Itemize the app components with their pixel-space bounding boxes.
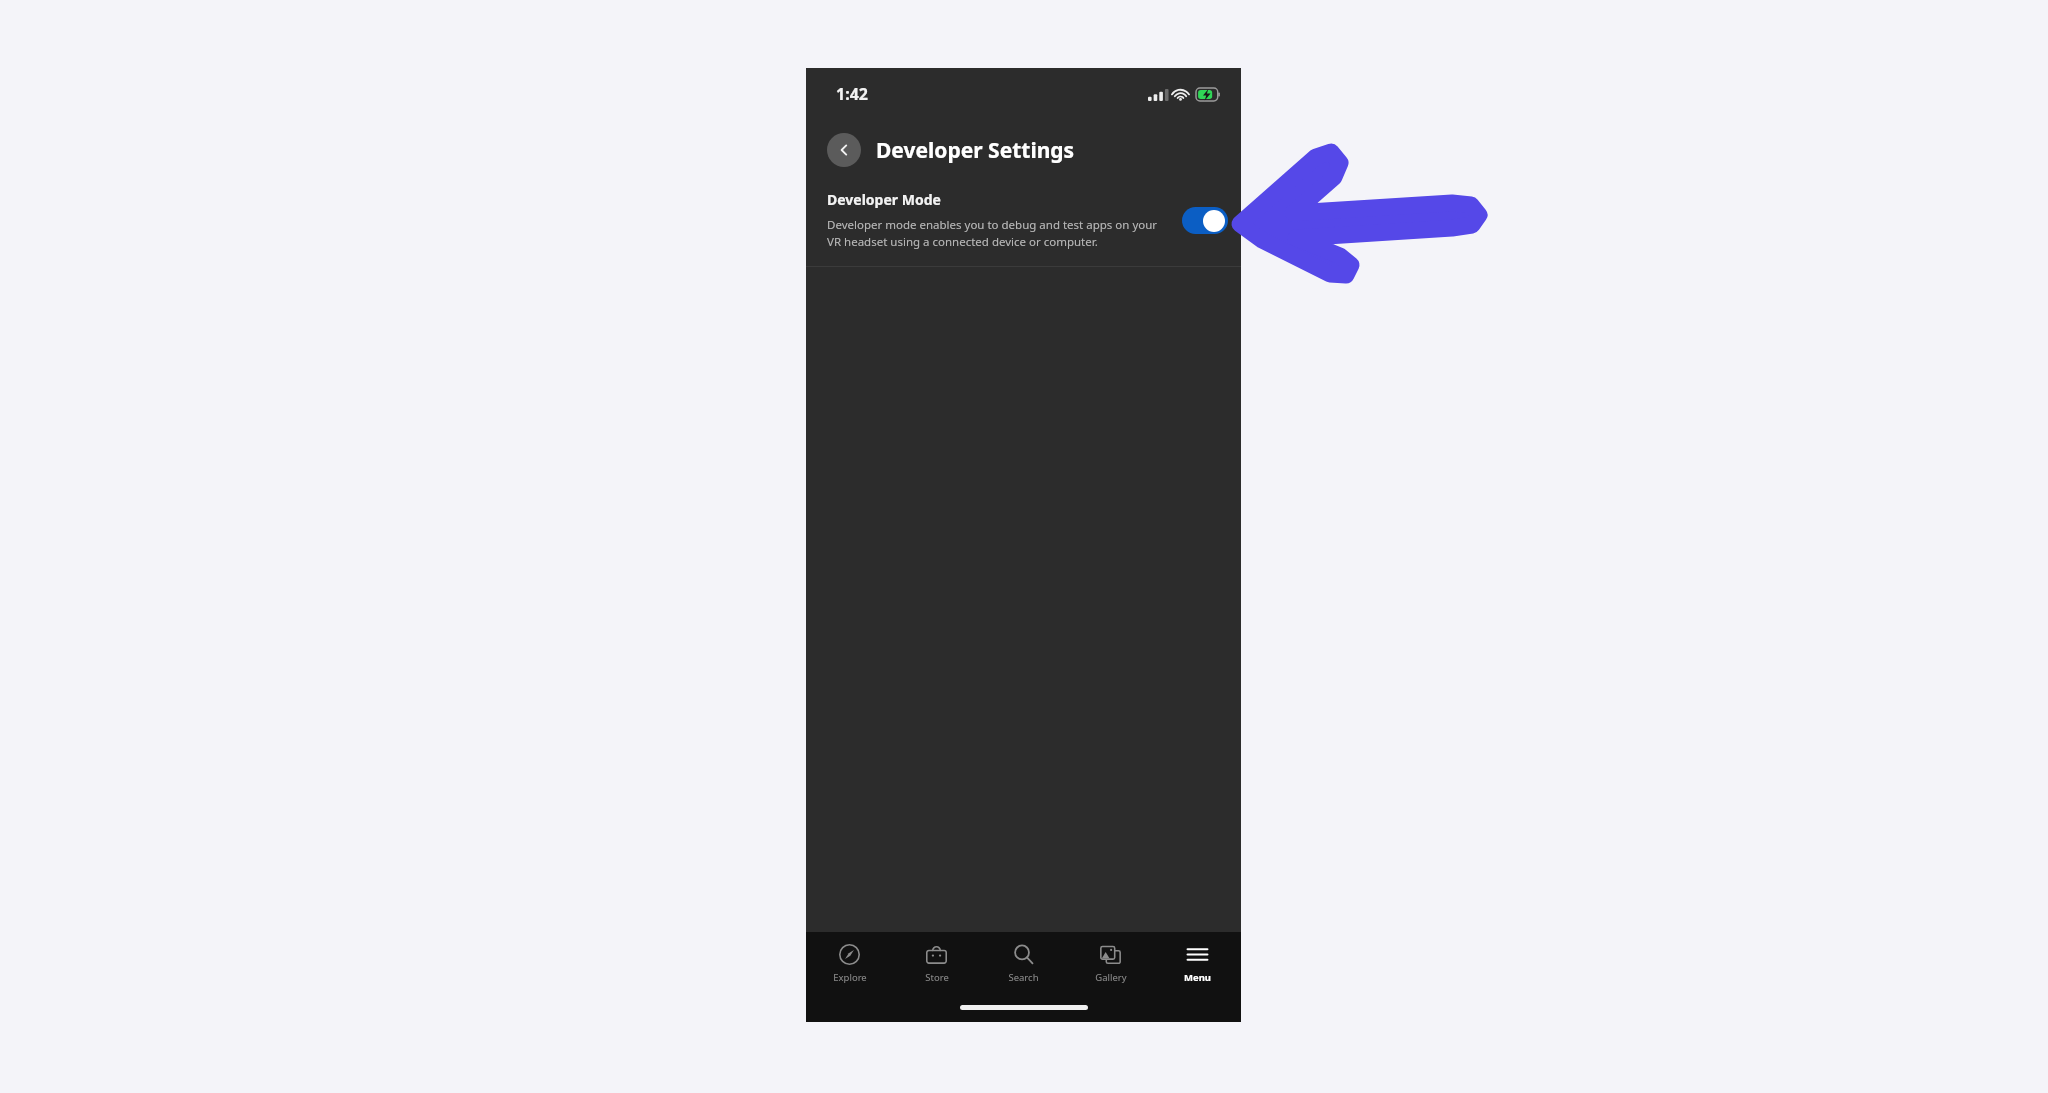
button[interactable]: Developer Mode [806,180,1241,266]
button[interactable]: Store [893,932,980,996]
button[interactable]: Developer Mode, on [1182,207,1228,234]
button[interactable]: Gallery [1067,932,1154,996]
button[interactable]: Explore [806,932,893,996]
staticText: Explore [833,971,867,984]
staticText: Developer Mode [827,190,941,209]
staticText: Developer mode enables you to debug and … [827,217,1160,250]
staticText: 1:42 [836,83,868,105]
button[interactable]: Search [980,932,1067,996]
staticText: Menu [1184,971,1211,984]
staticText: Developer Settings [876,136,1075,165]
button[interactable]: Menu [1154,932,1241,996]
staticText: Search [1008,971,1039,984]
staticText: Store [925,971,949,984]
staticText: Gallery [1095,971,1127,984]
button[interactable]: Back [827,133,861,167]
